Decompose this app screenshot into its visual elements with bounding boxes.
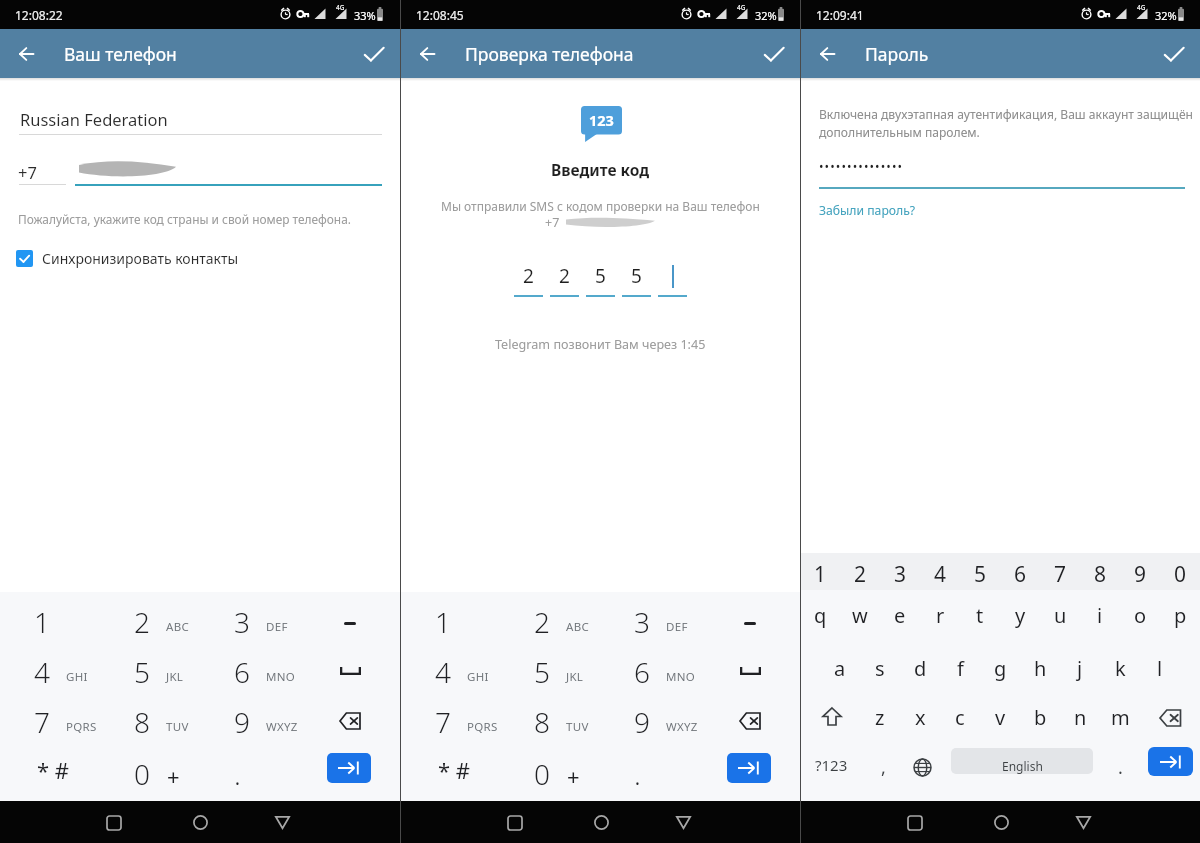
button[interactable]: Done [357,37,391,71]
button[interactable]: 1 [401,595,500,645]
button[interactable]: Done [1157,37,1191,71]
button[interactable]: Home [981,802,1022,843]
button[interactable]: g [980,645,1020,694]
button[interactable]: ?123 [807,743,855,801]
button[interactable]: o [1120,590,1160,645]
button[interactable]: 2 [550,261,579,297]
button[interactable]: h [1020,645,1060,694]
button[interactable]: 8 [1080,553,1120,590]
button[interactable]: x [900,694,940,743]
button[interactable]: u [1040,590,1080,645]
button[interactable]: 6 [1000,553,1040,590]
button[interactable]: Back [1063,802,1104,843]
button[interactable]: Забыли пароль? [819,200,916,221]
button[interactable]: . [200,742,300,801]
button[interactable]: 4 [0,645,100,695]
button[interactable]: Back [410,37,444,71]
button[interactable]: v [980,694,1020,743]
button[interactable]: 0 [100,742,200,801]
button[interactable]: * # [0,742,100,801]
button[interactable]: 5 [622,261,651,297]
button[interactable]: English [951,748,1093,774]
button[interactable]: 4 [920,553,960,590]
staticText: Пожалуйста, укажите код страны и свой но… [18,211,351,227]
button[interactable]: 2 [514,261,543,297]
button[interactable]: 3 [600,595,700,645]
button[interactable]: Shift [801,694,860,743]
button[interactable]: i [1080,590,1120,645]
button[interactable]: 3 [880,553,920,590]
button[interactable]: Change language [902,743,942,801]
button[interactable]: s [860,645,900,694]
button[interactable]: Синхронизировать контакты [13,246,249,271]
button[interactable]: Enter [300,742,400,801]
button[interactable]: 2 [500,595,600,645]
button[interactable]: 1 [801,553,840,590]
button[interactable]: Back [810,37,844,71]
button[interactable]: . [600,742,700,801]
button[interactable]: , [863,743,903,801]
button[interactable]: k [1100,645,1140,694]
button[interactable]: 7 [0,695,100,745]
button[interactable]: t [960,590,1000,645]
button[interactable]: 6 [200,645,300,695]
button[interactable]: 9 [200,695,300,745]
button[interactable]: 6 [600,645,700,695]
button[interactable]: Back [663,802,704,843]
button[interactable]: 1 [0,595,100,645]
button[interactable]: 7 [401,695,500,745]
button[interactable]: * # [401,742,500,801]
button[interactable]: 2 [100,595,200,645]
button[interactable]: e [880,590,920,645]
button[interactable]: c [940,694,980,743]
button[interactable] [700,595,800,645]
button[interactable]: Back [262,802,303,843]
button[interactable]: 0 [1160,553,1200,590]
button[interactable]: 4 [401,645,500,695]
button[interactable]: d [900,645,940,694]
button[interactable] [700,695,800,745]
button[interactable] [300,695,400,745]
button[interactable]: 8 [500,695,600,745]
button[interactable]: y [1000,590,1040,645]
button[interactable]: Recents [494,802,535,843]
button[interactable]: 0 [500,742,600,801]
button[interactable]: Back [9,37,43,71]
button[interactable]: l [1140,645,1180,694]
button[interactable] [658,261,687,297]
staticText: 7 [1054,560,1067,589]
button[interactable]: Done [757,37,791,71]
button[interactable]: 8 [100,695,200,745]
button[interactable]: 5 [960,553,1000,590]
button[interactable]: j [1060,645,1100,694]
button[interactable]: Enter [1148,747,1193,776]
button[interactable]: 9 [600,695,700,745]
button[interactable]: n [1060,694,1100,743]
button[interactable] [300,595,400,645]
button[interactable]: 5 [500,645,600,695]
button[interactable]: Recents [894,802,935,843]
button[interactable]: p [1160,590,1200,645]
button[interactable]: Home [581,802,622,843]
button[interactable]: 9 [1120,553,1160,590]
button[interactable]: q [801,590,840,645]
button[interactable]: 5 [586,261,615,297]
button[interactable]: 7 [1040,553,1080,590]
button[interactable]: f [940,645,980,694]
button[interactable]: . [1101,743,1139,801]
button[interactable]: b [1020,694,1060,743]
button[interactable]: Recents [93,802,134,843]
button[interactable]: r [920,590,960,645]
button[interactable]: 2 [840,553,880,590]
button[interactable]: m [1100,694,1140,743]
button[interactable]: Enter [700,742,800,801]
button[interactable]: 3 [200,595,300,645]
button[interactable] [700,645,800,695]
button[interactable] [300,645,400,695]
button[interactable]: Home [180,802,221,843]
button[interactable]: w [840,590,880,645]
button[interactable]: a [820,645,860,694]
button[interactable]: z [860,694,900,743]
button[interactable]: 5 [100,645,200,695]
button[interactable]: Delete [1140,694,1200,743]
